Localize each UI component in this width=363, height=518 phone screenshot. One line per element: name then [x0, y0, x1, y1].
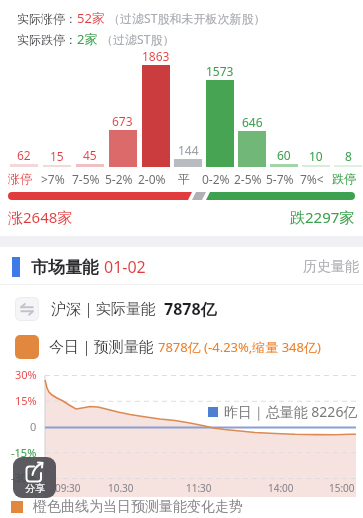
staticText: 2-5%: [234, 171, 262, 187]
staticText: 2家: [77, 30, 98, 48]
staticText: 平: [178, 171, 190, 186]
staticText: 01-02: [104, 256, 146, 278]
staticText: >7%: [41, 171, 65, 187]
staticText: 0: [30, 419, 37, 434]
staticText: 60: [277, 147, 291, 163]
staticText: 15:00: [329, 481, 355, 495]
staticText: -15%: [11, 445, 37, 460]
staticText: 昨日｜总量能 8226亿: [224, 402, 358, 421]
staticText: 历史量能: [303, 258, 359, 276]
staticText: 5-7%: [266, 171, 294, 187]
staticText: 62: [17, 147, 31, 163]
staticText: 144: [178, 142, 199, 158]
staticText: 673: [112, 113, 133, 129]
staticText: 11:30: [186, 481, 212, 495]
staticText: 7878亿: [164, 298, 217, 320]
staticText: 涨2648家: [8, 207, 73, 227]
staticText: 7%<: [300, 171, 324, 187]
staticText: 15: [50, 148, 64, 164]
staticText: 1863: [142, 48, 170, 64]
button[interactable]: 历史量能: [303, 258, 359, 276]
staticText: 52家: [77, 9, 105, 27]
button[interactable]: 分享: [13, 457, 56, 498]
staticText: （过滤ST股）: [98, 31, 175, 47]
staticText: 2-0%: [138, 171, 166, 187]
staticText: 10.30: [108, 481, 134, 495]
staticText: -30%: [11, 470, 37, 485]
staticText: 跌2297家: [290, 207, 355, 227]
staticText: 5-2%: [105, 171, 133, 187]
staticText: 沪深｜实际量能: [51, 300, 156, 319]
staticText: 分享: [25, 482, 45, 495]
staticText: 7-5%: [72, 171, 100, 187]
staticText: 橙色曲线为当日预测量能变化走势: [33, 498, 243, 516]
staticText: 10: [309, 148, 323, 164]
staticText: 1573: [206, 63, 234, 79]
staticText: 646: [242, 114, 263, 130]
staticText: 涨停: [8, 171, 32, 186]
staticText: 14:00: [268, 481, 294, 495]
staticText: 0-2%: [202, 171, 230, 187]
staticText: （过滤ST股和未开板次新股）: [105, 10, 266, 26]
staticText: 今日｜预测量能: [49, 338, 154, 357]
staticText: 15%: [15, 393, 37, 408]
staticText: 8: [345, 148, 352, 164]
staticText: 跌停: [332, 171, 356, 186]
staticText: 市场量能: [31, 255, 104, 278]
staticText: 实际涨停：: [17, 11, 77, 26]
staticText: 45: [83, 147, 97, 163]
staticText: 7878亿 (-4.23%,缩量 348亿): [158, 338, 321, 356]
staticText: 09:30: [55, 481, 81, 495]
staticText: 30%: [15, 367, 37, 382]
staticText: 实际跌停：: [17, 32, 77, 47]
